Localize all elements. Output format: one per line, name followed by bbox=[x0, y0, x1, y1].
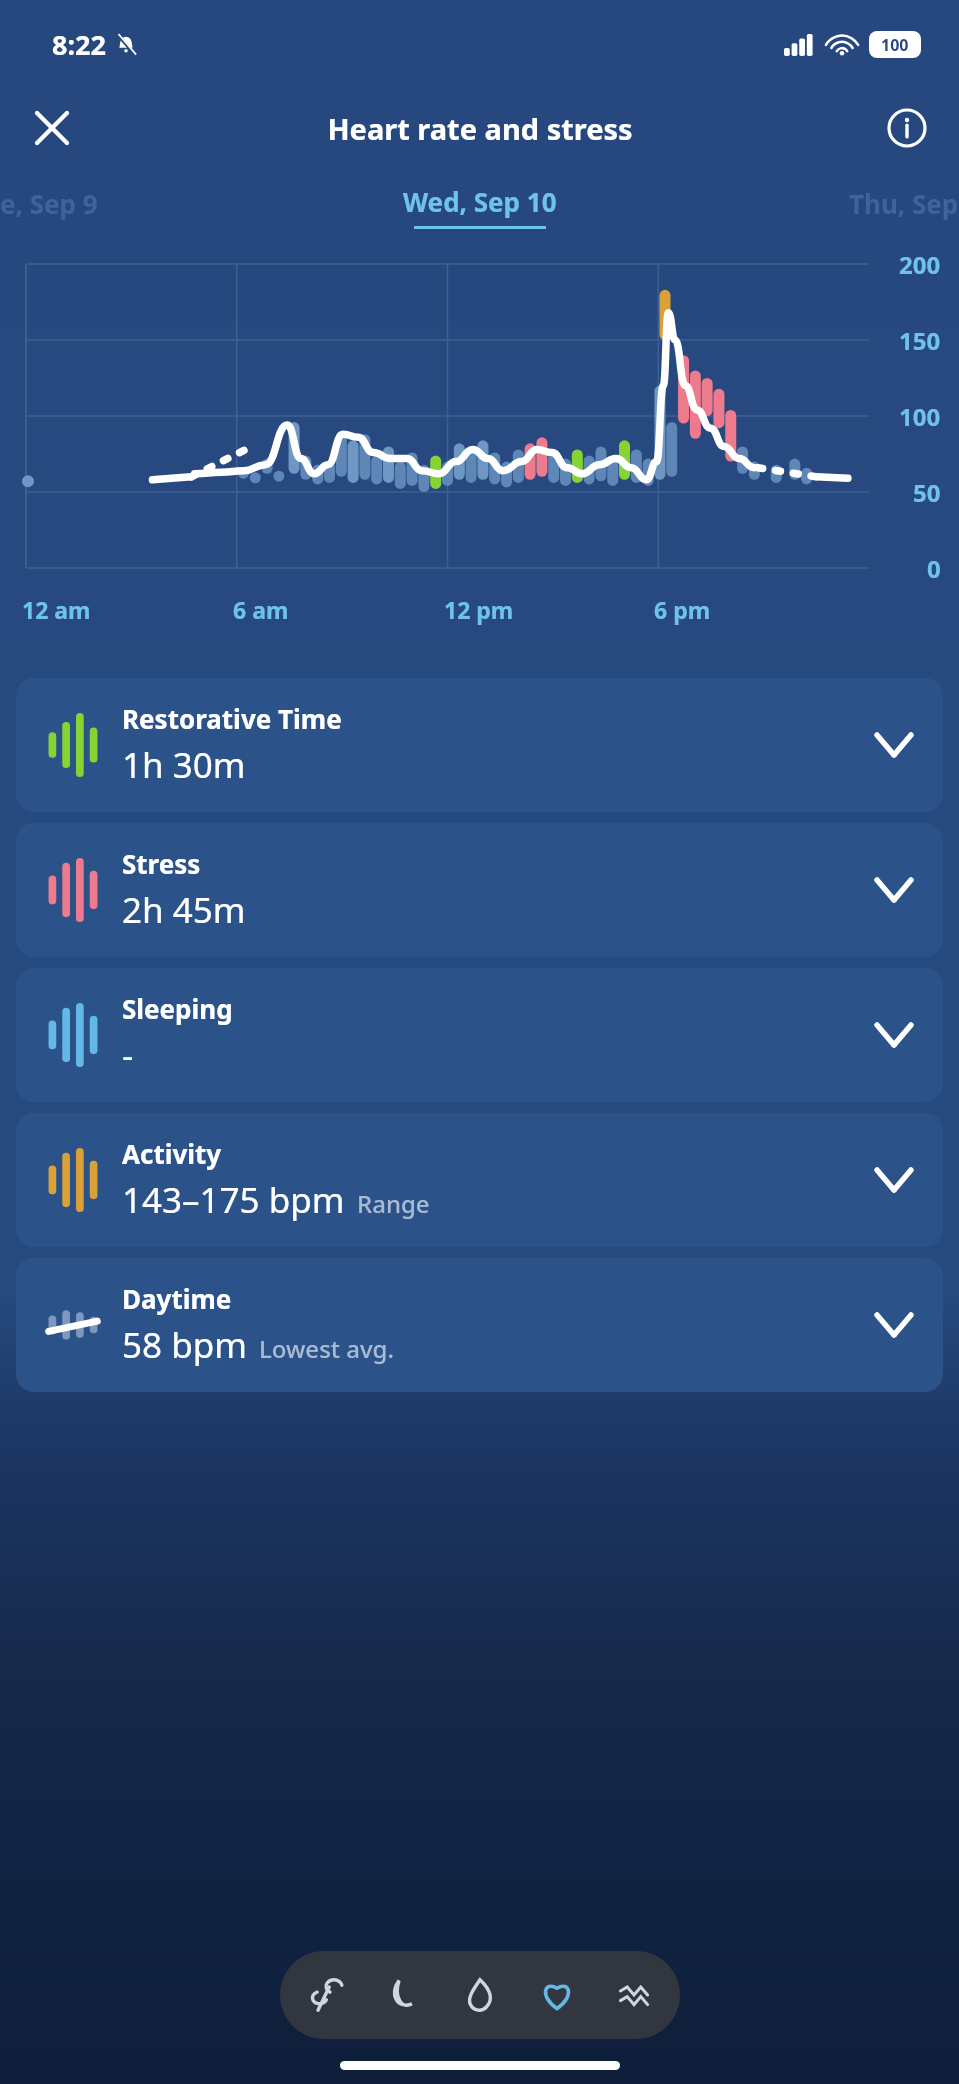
staticText: 0 bbox=[927, 552, 941, 585]
staticText: 12 am bbox=[22, 594, 91, 625]
button[interactable]: Restorative Time bbox=[16, 678, 943, 812]
staticText: 6 am bbox=[233, 594, 289, 625]
staticText: 143–175 bpm bbox=[122, 1176, 345, 1224]
button[interactable]: Daytime bbox=[16, 1258, 943, 1392]
button[interactable]: e, Sep 9 bbox=[0, 186, 98, 221]
button[interactable]: Body bbox=[295, 1964, 357, 2026]
staticText: Wed, Sep 10 bbox=[403, 184, 557, 219]
button[interactable]: Wed, Sep 10 bbox=[403, 168, 557, 229]
button[interactable]: Thu, Sep bbox=[849, 186, 959, 221]
staticText: 58 bpm bbox=[122, 1321, 247, 1369]
staticText: Heart rate and stress bbox=[327, 109, 633, 148]
button[interactable]: Close bbox=[24, 100, 80, 156]
staticText: 50 bbox=[913, 476, 941, 509]
button[interactable]: Energy bbox=[449, 1964, 511, 2026]
button[interactable]: Expand Stress bbox=[859, 855, 929, 925]
button[interactable]: Stress bbox=[16, 823, 943, 957]
staticText: 100 bbox=[881, 34, 909, 56]
button[interactable]: Activity bbox=[16, 1113, 943, 1247]
button[interactable]: Sleeping bbox=[16, 968, 943, 1102]
button[interactable]: Trends bbox=[603, 1964, 665, 2026]
button[interactable]: Expand Restorative Time bbox=[859, 710, 929, 780]
staticText: Sleeping bbox=[122, 991, 233, 1026]
staticText: 100 bbox=[899, 400, 941, 433]
button[interactable]: Expand Activity bbox=[859, 1145, 929, 1215]
button[interactable]: Sleep bbox=[372, 1964, 434, 2026]
staticText: 150 bbox=[899, 324, 941, 357]
button[interactable]: Information bbox=[879, 100, 935, 156]
staticText: Activity bbox=[122, 1136, 222, 1171]
staticText: 12 pm bbox=[444, 594, 514, 625]
staticText: Restorative Time bbox=[122, 701, 342, 736]
staticText: Stress bbox=[122, 846, 201, 881]
staticText: 6 pm bbox=[654, 594, 711, 625]
staticText: Daytime bbox=[122, 1281, 232, 1316]
staticText: - bbox=[122, 1031, 134, 1079]
staticText: 2h 45m bbox=[122, 886, 246, 934]
button[interactable]: Expand Daytime bbox=[859, 1290, 929, 1360]
button[interactable]: Heart rate bbox=[526, 1964, 588, 2026]
staticText: 1h 30m bbox=[122, 741, 246, 789]
button[interactable]: Expand Sleeping bbox=[859, 1000, 929, 1070]
staticText: Range bbox=[357, 1187, 430, 1220]
staticText: 8:22 bbox=[52, 26, 106, 63]
staticText: 200 bbox=[899, 248, 941, 281]
staticText: Lowest avg. bbox=[259, 1332, 395, 1365]
